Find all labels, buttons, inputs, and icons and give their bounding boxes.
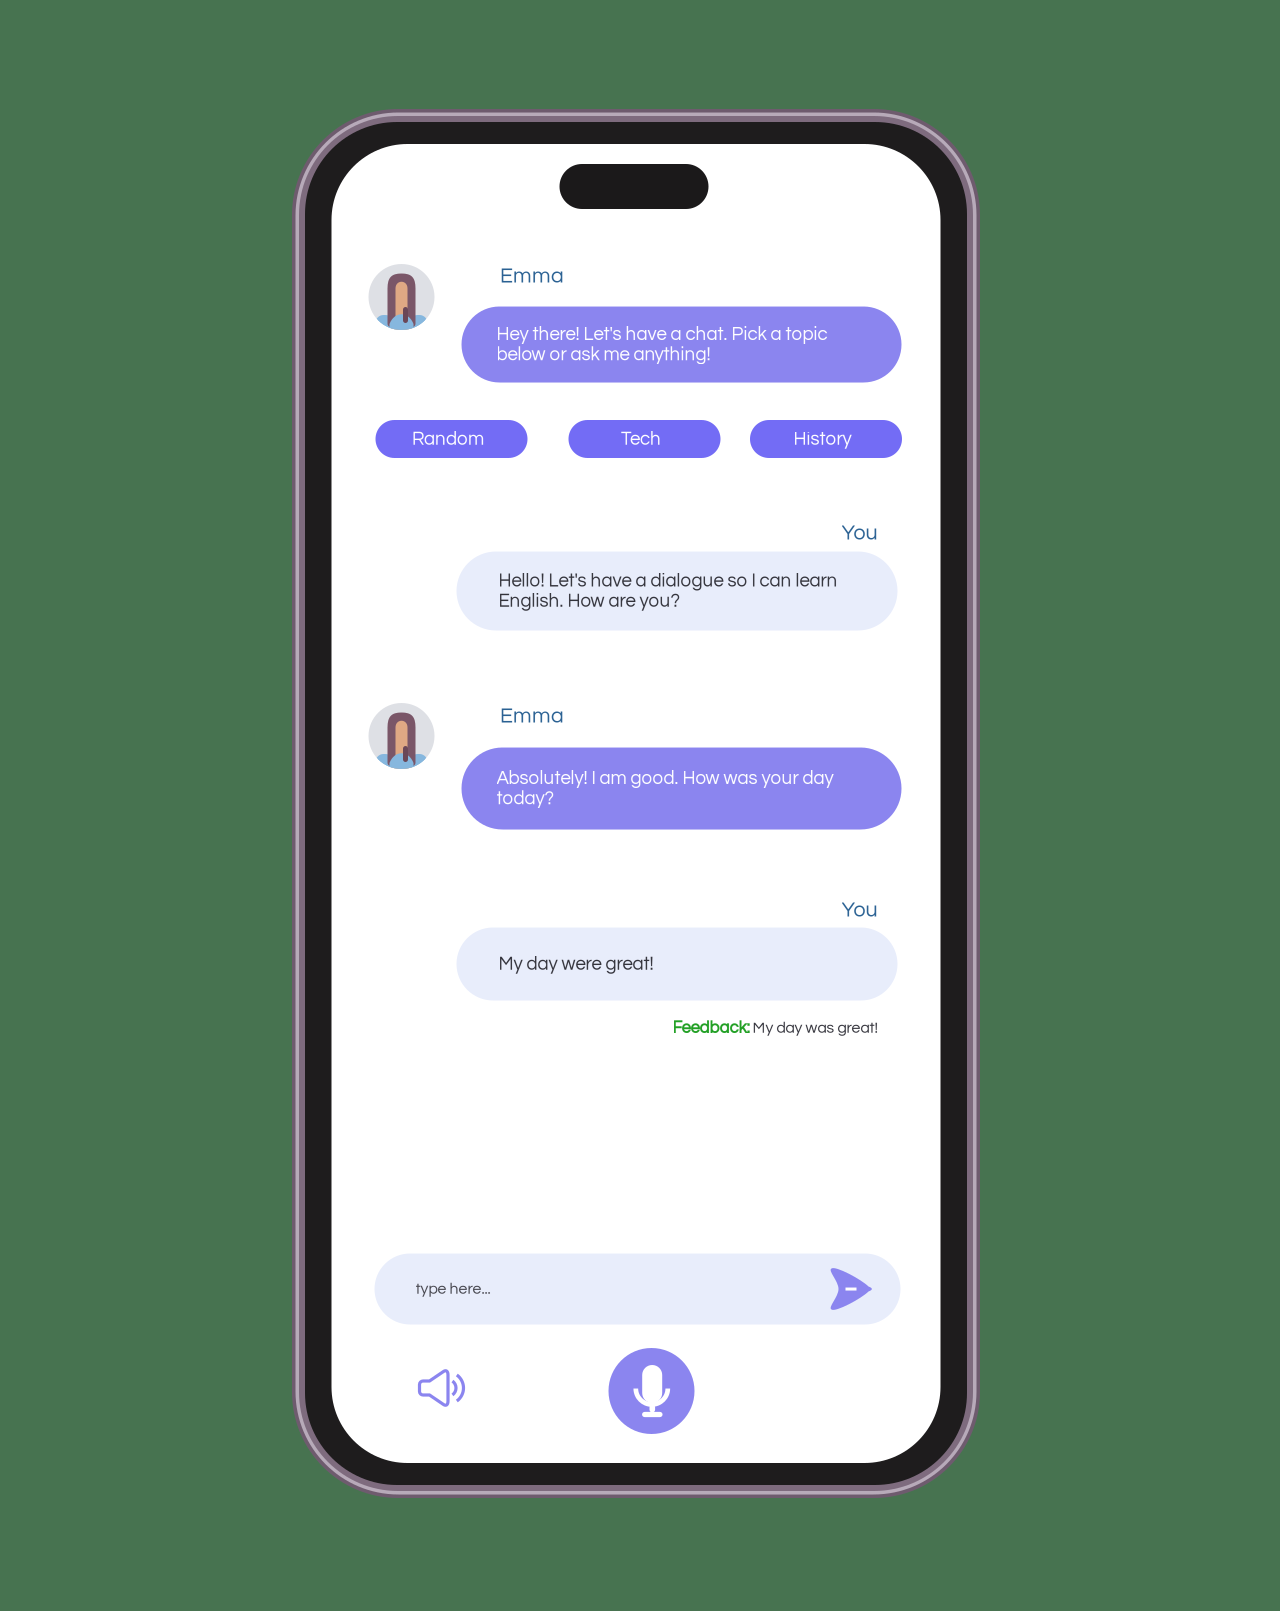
staticText: below or ask me anything! <box>496 345 710 364</box>
staticText: Random <box>412 429 484 449</box>
button[interactable]: Play audio <box>399 1348 483 1428</box>
staticText: My day was great! <box>749 1020 877 1036</box>
staticText: Absolutely! I am good. How was your day <box>496 769 833 788</box>
button[interactable]: Tech <box>568 420 720 458</box>
button[interactable]: Random <box>375 420 527 458</box>
staticText: today? <box>496 789 554 808</box>
staticText: Feedback: <box>672 1019 749 1036</box>
staticText: You <box>841 522 877 544</box>
button[interactable]: History <box>750 420 902 458</box>
staticText: You <box>841 899 877 921</box>
staticText: My day were great! <box>498 954 653 974</box>
staticText: Hey there! Let's have a chat. Pick a top… <box>496 325 827 344</box>
button[interactable]: Record voice message <box>608 1348 694 1434</box>
staticText: History <box>793 429 851 449</box>
staticText: Emma <box>500 705 564 727</box>
staticText: type here... <box>415 1281 490 1297</box>
staticText: English. How are you? <box>498 591 680 611</box>
button[interactable]: Send message <box>826 1265 873 1313</box>
staticText: Emma <box>500 265 564 287</box>
staticText: Hello! Let's have a dialogue so I can le… <box>498 571 837 590</box>
staticText: Tech <box>621 429 661 449</box>
